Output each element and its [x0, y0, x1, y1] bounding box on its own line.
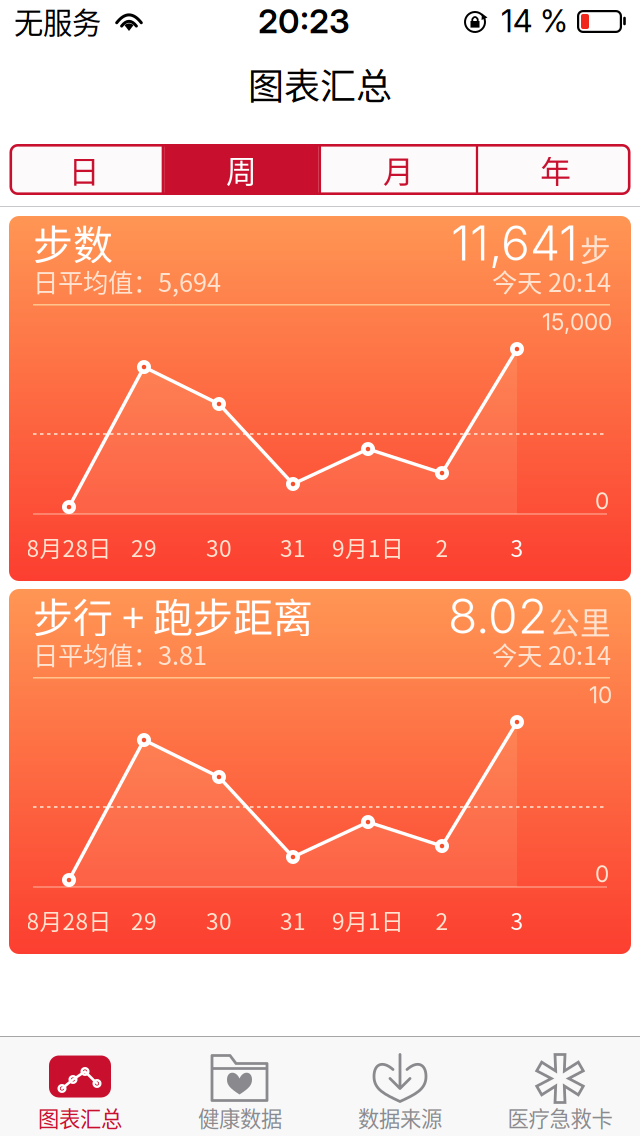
staticText: 今天 20:14: [492, 263, 611, 299]
staticText: 9月1日: [332, 904, 404, 936]
button[interactable]: 周: [164, 144, 319, 195]
staticText: 20:23: [258, 1, 350, 41]
staticText: 29: [131, 531, 157, 563]
staticText: 3: [510, 531, 523, 563]
button[interactable]: 医疗急救卡: [480, 1037, 640, 1136]
staticText: 图表汇总: [38, 1102, 122, 1133]
staticText: 31: [280, 531, 306, 563]
staticText: 公里: [549, 599, 611, 643]
staticText: 0: [595, 487, 609, 515]
staticText: 年: [540, 147, 571, 192]
staticText: 健康数据: [198, 1102, 282, 1133]
staticText: 14 %: [501, 2, 568, 39]
staticText: 30: [206, 904, 232, 936]
staticText: 步: [580, 226, 611, 270]
staticText: 数据来源: [358, 1102, 442, 1133]
staticText: 日: [69, 147, 100, 192]
staticText: 30: [206, 531, 232, 563]
button[interactable]: 年: [478, 144, 633, 195]
button[interactable]: 月: [321, 144, 476, 195]
staticText: 2: [435, 904, 448, 936]
staticText: 步数: [33, 213, 113, 271]
staticText: 9月1日: [332, 531, 404, 563]
staticText: 8月28日: [26, 904, 111, 936]
staticText: 图表汇总: [248, 58, 392, 110]
staticText: 2: [435, 531, 448, 563]
button[interactable]: 数据来源: [320, 1037, 480, 1136]
staticText: 10: [589, 681, 612, 709]
staticText: 周: [226, 147, 257, 192]
staticText: 步行 + 跑步距离: [33, 586, 313, 644]
staticText: 11,641: [451, 214, 578, 272]
staticText: 8.02: [448, 587, 547, 645]
staticText: 15,000: [542, 308, 612, 336]
staticText: 今天 20:14: [492, 636, 611, 672]
staticText: 31: [280, 904, 306, 936]
staticText: 29: [131, 904, 157, 936]
staticText: 日平均值：5,694: [33, 263, 221, 299]
staticText: 医疗急救卡: [507, 1102, 612, 1133]
staticText: 无服务: [14, 0, 101, 42]
button[interactable]: 日: [7, 144, 162, 195]
button[interactable]: 健康数据: [160, 1037, 320, 1136]
staticText: 日平均值：3.81: [33, 636, 207, 672]
staticText: 0: [595, 860, 609, 888]
staticText: 8月28日: [26, 531, 111, 563]
button[interactable]: 图表汇总: [0, 1037, 160, 1136]
staticText: 3: [510, 904, 523, 936]
staticText: 月: [383, 147, 414, 192]
